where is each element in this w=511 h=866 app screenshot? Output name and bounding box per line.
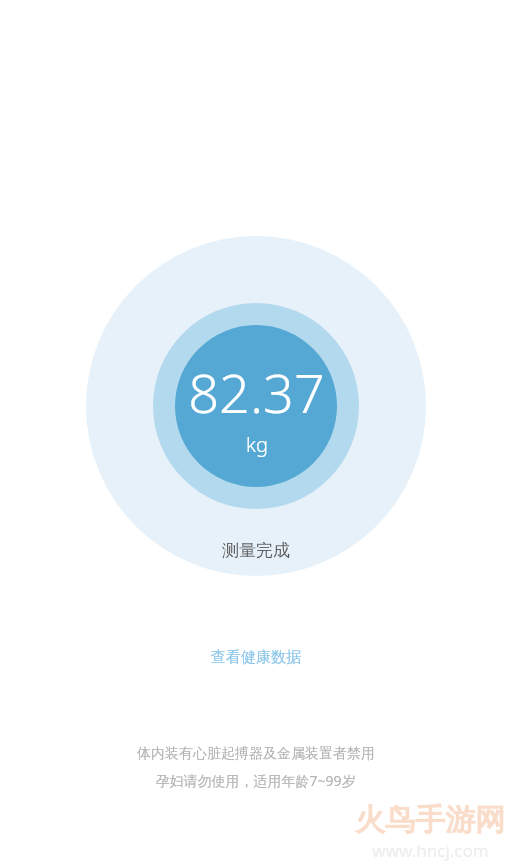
- staticText: 查看健康数据: [211, 648, 301, 667]
- staticText: www.hncj.com: [372, 839, 489, 862]
- staticText: 孕妇请勿使用，适用年龄7~99岁: [155, 771, 356, 790]
- staticText: 火鸟手游网: [355, 801, 505, 839]
- staticText: kg: [246, 431, 268, 458]
- staticText: 测量完成: [222, 540, 290, 561]
- other: Watermark: [355, 801, 505, 862]
- button[interactable]: 查看健康数据: [191, 640, 321, 675]
- staticText: 体内装有心脏起搏器及金属装置者禁用: [137, 745, 375, 763]
- staticText: 82.37: [188, 355, 325, 429]
